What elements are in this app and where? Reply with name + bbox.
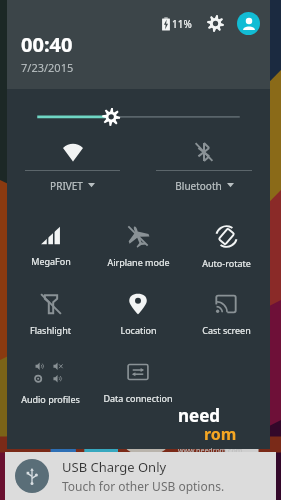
button[interactable]: PRIVET: [7, 134, 138, 207]
button[interactable]: Flashlight: [7, 287, 94, 342]
staticText: 00:40: [21, 31, 73, 58]
button[interactable]: Audio profiles: [7, 355, 94, 423]
button[interactable]: Brightness: [7, 89, 270, 134]
button[interactable]: Location: [94, 287, 182, 342]
staticText: Touch for other USB options.: [62, 478, 225, 494]
staticText: Audio profiles: [21, 393, 80, 405]
staticText: Data connection: [103, 392, 173, 404]
staticText: 7/23/2015: [21, 60, 74, 75]
staticText: 11%: [172, 17, 192, 31]
staticText: Auto-rotate: [202, 257, 251, 269]
button[interactable]: Cast screen: [182, 287, 270, 342]
staticText: MegaFon: [31, 255, 71, 267]
staticText: need: [178, 404, 221, 427]
staticText: Location: [120, 324, 157, 336]
staticText: Flashlight: [30, 324, 71, 336]
staticText: www.needrom.com: [178, 446, 243, 456]
button[interactable]: Data connection: [94, 355, 182, 423]
button[interactable]: Bluetooth: [138, 134, 270, 207]
button[interactable]: User profile: [237, 12, 260, 35]
staticText: USB Charge Only: [62, 458, 167, 476]
button[interactable]: MegaFon: [7, 219, 94, 273]
staticText: Cast screen: [202, 324, 251, 336]
button[interactable]: Settings: [205, 13, 226, 34]
staticText: Airplane mode: [107, 256, 170, 268]
staticText: rom: [204, 423, 237, 445]
button[interactable]: USB Charge Only: [5, 452, 276, 500]
other: Battery charging: [159, 17, 168, 31]
button[interactable]: Airplane mode: [94, 219, 182, 274]
staticText: PRIVET: [50, 179, 83, 193]
staticText: Bluetooth: [175, 179, 222, 193]
button[interactable]: Auto-rotate: [182, 219, 270, 275]
